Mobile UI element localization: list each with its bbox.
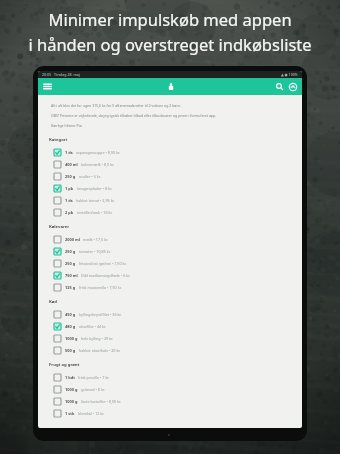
staticText: hakket tomat • 3,95 kr. — [76, 198, 115, 203]
staticText: hakket okse/kalv • 20 kr. — [79, 348, 121, 353]
staticText: 1 ds — [65, 150, 73, 155]
staticText: Minimer impulskøb med appen — [48, 8, 292, 30]
staticText: faste kartofler • 8,95 kr. — [81, 399, 121, 404]
button[interactable]: 1 stk — [49, 407, 292, 419]
staticText: tortellini/wok • 16 kr. — [77, 210, 113, 215]
staticText: fetaost/ost ign/ost • 7,50 kr. — [79, 261, 127, 266]
staticText: 1000 g — [65, 399, 78, 404]
staticText: 125 g — [65, 285, 76, 290]
staticText: 400 ml — [65, 162, 78, 167]
button[interactable]: 480 g — [49, 320, 292, 332]
staticText: 1000 g — [65, 336, 78, 341]
staticText: Kategori — [49, 137, 67, 143]
staticText: lasagneplader • 8 kr. — [77, 186, 112, 191]
staticText: 250 g — [65, 174, 76, 179]
staticText: frisk persille • 7 kr. — [78, 375, 110, 380]
staticText: OBS! Priserne er vejledende, da jeg typi… — [51, 113, 217, 118]
staticText: Alt i alt blev det for ugen 315,6 kr. fo… — [51, 103, 182, 108]
button[interactable]: 250 g — [49, 170, 292, 182]
staticText: mælk • 17,5 kr. — [83, 237, 109, 242]
staticText: tomater • 10,85 kr. — [79, 249, 111, 254]
button[interactable]: 1 ds — [49, 146, 292, 158]
staticText: gulerod • 8 kr. — [81, 387, 105, 392]
staticText: 1 ds — [65, 198, 73, 203]
button[interactable]: 1 bdt — [49, 371, 292, 383]
staticText: 500 g — [65, 348, 76, 353]
staticText: 1 bdt — [65, 375, 75, 380]
button[interactable]: 2 pk — [49, 206, 292, 218]
button[interactable]: 1 pk — [49, 182, 292, 194]
button[interactable]: 500 g — [49, 344, 292, 356]
staticText: Kølevarer — [49, 224, 70, 230]
button[interactable]: Menu — [42, 81, 53, 92]
staticText: 480 g — [65, 324, 76, 329]
staticText: 1 stk — [65, 411, 75, 416]
staticText: 250 g — [65, 261, 76, 266]
staticText: 750 ml — [65, 273, 78, 278]
staticText: 2 pk — [65, 210, 74, 215]
staticText: i hånden og overstreget indkøbsliste — [28, 33, 312, 55]
button[interactable]: 1 ds — [49, 194, 292, 206]
button[interactable]: 125 g — [49, 281, 292, 293]
staticText: 1000 g — [65, 387, 78, 392]
staticText: Dild madlavningsfløde • 6 kr. — [81, 273, 131, 278]
button[interactable]: 1000 g — [49, 332, 292, 344]
staticText: Kærlige hilsner Pia — [51, 123, 82, 128]
staticText: kokosmælk • 8,5 kr. — [81, 162, 115, 167]
staticText: kyllingebryst/filet • 35 kr. — [79, 312, 122, 317]
button[interactable]: 2000 ml — [49, 233, 292, 245]
staticText: oksefilet • 44 kr. — [79, 324, 106, 329]
staticText: 250 g — [65, 249, 76, 254]
button[interactable]: 450 g — [49, 308, 292, 320]
staticText: ▲ ◼ 100% — [281, 72, 298, 77]
button[interactable]: 400 ml — [49, 158, 292, 170]
button[interactable]: Account — [287, 81, 298, 92]
staticText: frisk mozzarella • 7,50 kr. — [79, 285, 122, 290]
staticText: Frugt og grønt — [49, 362, 80, 368]
staticText: Kød — [49, 299, 58, 305]
staticText: blomkål • 12 kr. — [78, 411, 105, 416]
staticText: 2000 ml — [65, 237, 80, 242]
staticText: 450 g — [65, 312, 76, 317]
staticText: asparagessuppe • 8,95 kr. — [76, 150, 120, 155]
button[interactable]: 1000 g — [49, 383, 292, 395]
staticText: hele kylling • 29 kr. — [81, 336, 113, 341]
button[interactable]: 250 g — [49, 257, 292, 269]
button[interactable]: Search — [274, 81, 285, 92]
button[interactable]: 1000 g — [49, 395, 292, 407]
button[interactable]: 250 g — [49, 245, 292, 257]
staticText: 20:05 Tirsdag 28. maj — [42, 72, 80, 77]
button[interactable]: 750 ml — [49, 269, 292, 281]
staticText: 1 pk — [65, 186, 74, 191]
staticText: nudler • 5 kr. — [79, 174, 101, 179]
button[interactable]: App logo — [165, 81, 176, 92]
